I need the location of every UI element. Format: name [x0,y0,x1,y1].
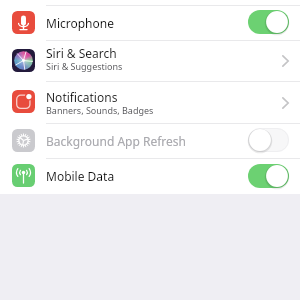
button[interactable]: On [248,164,289,188]
button[interactable]: Background App Refresh [0,124,300,158]
button[interactable]: Off [248,128,289,152]
staticText: Banners, Sounds, Badges [46,104,154,116]
button[interactable]: Open [278,91,292,115]
staticText: Notifications [46,89,118,105]
staticText: Siri & Suggestions [46,60,123,72]
button[interactable]: Microphone [0,6,300,40]
staticText: Mobile Data [46,168,115,184]
button[interactable]: Mobile Data [0,159,300,194]
staticText: Siri & Search [46,45,117,61]
staticText: Background App Refresh [46,133,186,149]
button[interactable]: On [248,10,289,34]
button[interactable]: Notifications [0,82,300,123]
staticText: Microphone [46,15,114,31]
button[interactable]: Siri & Search [0,41,300,81]
button[interactable]: Open [278,49,292,73]
